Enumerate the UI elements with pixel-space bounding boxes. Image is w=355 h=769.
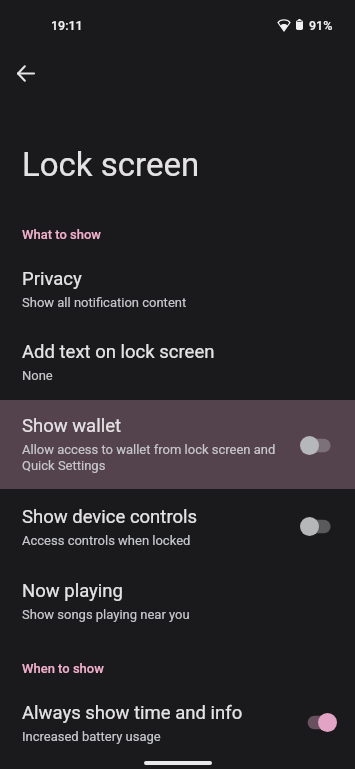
button[interactable]: What to show — [0, 217, 355, 251]
staticText: Show device controls — [22, 506, 198, 528]
button[interactable]: Off — [300, 517, 337, 536]
staticText: Allow access to wallet from lock screen … — [22, 442, 276, 473]
staticText: Now playing — [22, 580, 123, 602]
button[interactable]: Show wallet — [0, 400, 355, 489]
staticText: Access controls when locked — [22, 533, 191, 548]
button[interactable]: Now playing — [0, 561, 355, 635]
button[interactable]: Always show time and info — [0, 690, 355, 764]
staticText: Add text on lock screen — [22, 341, 215, 363]
staticText: When to show — [22, 661, 104, 676]
staticText: What to show — [22, 227, 101, 242]
staticText: 19:11 — [51, 18, 83, 33]
button[interactable]: Add text on lock screen — [0, 322, 355, 396]
button[interactable]: On — [300, 713, 337, 732]
staticText: 91% — [309, 18, 333, 33]
button[interactable]: Privacy — [0, 249, 355, 323]
staticText: Show wallet — [22, 415, 122, 437]
button[interactable]: When to show — [0, 651, 355, 685]
button[interactable]: Navigate up — [5, 53, 45, 93]
staticText: Lock screen — [22, 145, 200, 184]
button[interactable]: Off — [300, 436, 337, 455]
staticText: Increased battery usage — [22, 729, 161, 744]
staticText: Show all notification content — [22, 295, 187, 310]
staticText: None — [22, 368, 53, 383]
button[interactable]: Show device controls — [0, 489, 355, 563]
staticText: Privacy — [22, 268, 82, 290]
staticText: Show songs playing near you — [22, 607, 190, 622]
staticText: Always show time and info — [22, 702, 243, 724]
